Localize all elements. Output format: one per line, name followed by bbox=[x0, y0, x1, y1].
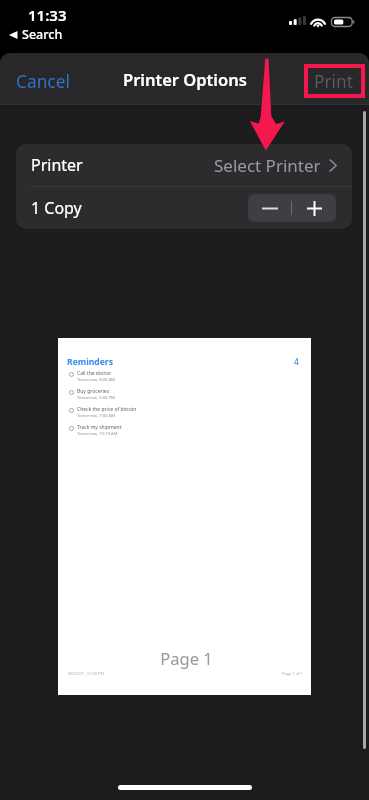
staticText: Track my shipment bbox=[77, 424, 122, 431]
staticText: Printer Options bbox=[123, 68, 247, 90]
staticText: Reminders bbox=[67, 356, 114, 368]
staticText: Cancel bbox=[16, 70, 70, 94]
staticText: Print bbox=[314, 70, 354, 94]
staticText: Search bbox=[22, 26, 63, 43]
staticText: 1 Copy bbox=[31, 197, 82, 219]
button[interactable]: Increase copies bbox=[292, 194, 336, 222]
button[interactable]: Print bbox=[309, 66, 359, 98]
button[interactable]: Decrease copies bbox=[248, 194, 291, 222]
staticText: Printer bbox=[31, 154, 83, 176]
staticText: Check the price of bitcoin bbox=[77, 406, 137, 413]
staticText: Page 1 of 1 bbox=[282, 671, 303, 676]
staticText: 05/22/21, 11:33 PM bbox=[68, 671, 105, 676]
staticText: Buy groceries bbox=[77, 388, 110, 395]
button[interactable]: Printer bbox=[16, 144, 352, 186]
staticText: 4 bbox=[294, 356, 299, 368]
staticText: Tomorrow, 5:00 PM bbox=[77, 395, 115, 401]
staticText: 11:33 bbox=[28, 5, 67, 25]
staticText: Tomorrow, 7:00 AM bbox=[77, 413, 116, 419]
staticText: Call the doctor bbox=[77, 370, 112, 377]
staticText: Tomorrow, 10:13 AM bbox=[77, 431, 118, 437]
staticText: Tomorrow, 8:00 AM bbox=[77, 377, 116, 383]
staticText: Page 1 bbox=[60, 647, 313, 669]
staticText: Select Printer bbox=[214, 154, 321, 177]
button[interactable]: Cancel bbox=[11, 66, 75, 98]
